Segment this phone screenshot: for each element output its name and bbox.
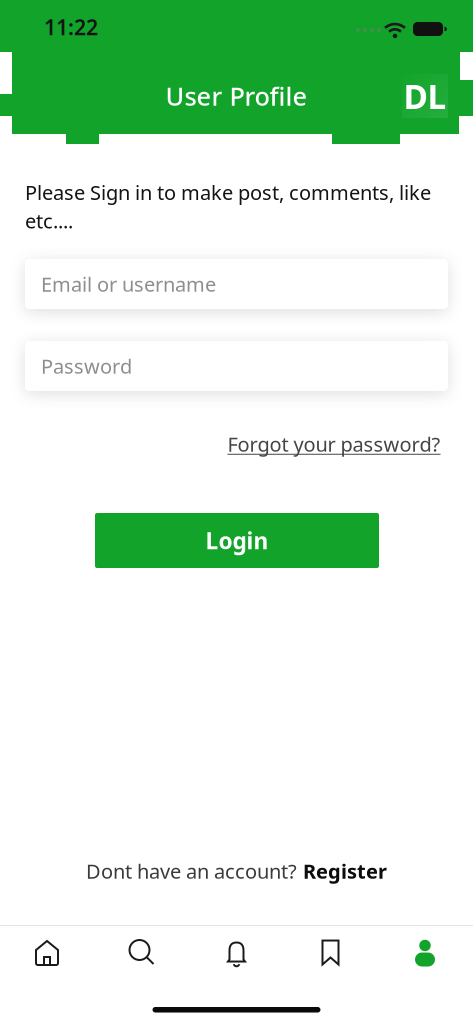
staticText: Dont have an account? — [86, 858, 297, 884]
staticText: Forgot your password? — [227, 431, 440, 457]
button[interactable]: Password — [25, 341, 448, 391]
staticText: Please Sign in to make post, comments, l… — [25, 179, 431, 206]
button[interactable]: Email or username — [25, 259, 448, 309]
staticText: DL — [403, 74, 446, 118]
button[interactable]: DL — [402, 74, 448, 118]
staticText: 11:22 — [44, 13, 98, 41]
button[interactable] — [306, 929, 354, 977]
button[interactable] — [23, 929, 71, 977]
staticText: etc.... — [25, 208, 73, 234]
button[interactable] — [117, 929, 165, 977]
button[interactable] — [212, 929, 260, 977]
staticText: Register — [303, 858, 387, 884]
button[interactable]: Forgot your password? — [227, 431, 440, 457]
staticText: Login — [205, 525, 268, 555]
button[interactable]: Login — [95, 513, 379, 568]
button[interactable]: Register — [303, 858, 387, 884]
button[interactable] — [401, 929, 449, 977]
staticText: Password — [41, 353, 132, 379]
staticText: Email or username — [41, 271, 216, 297]
staticText: User Profile — [165, 79, 307, 113]
